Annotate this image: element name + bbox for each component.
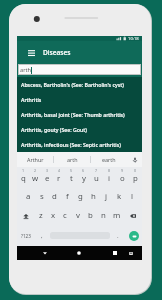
staticText: Abscess, Bartholin's (See: Bartholin's c… (21, 81, 124, 88)
button[interactable]: g (74, 187, 87, 206)
staticText: 0 (134, 168, 137, 173)
staticText: k (117, 191, 122, 202)
button[interactable]: 8 (103, 167, 116, 187)
button[interactable]: , (34, 225, 50, 246)
button[interactable]: arth (54, 152, 90, 167)
staticText: 6 (82, 168, 85, 173)
button[interactable]: l (126, 187, 139, 206)
button[interactable]: a (21, 187, 35, 206)
button[interactable]: Arthritis, infectious (See: Septic arthr… (17, 137, 142, 152)
staticText: u (94, 173, 99, 184)
button[interactable]: c (59, 206, 71, 225)
button[interactable]: Arthritis, gouty (See: Gout) (17, 122, 142, 137)
staticText: d (52, 191, 57, 202)
button[interactable]: n (97, 206, 110, 225)
staticText: . (117, 232, 119, 240)
button[interactable]: b (84, 206, 97, 225)
staticText: 2 (34, 168, 37, 173)
staticText: g (78, 191, 83, 202)
staticText: , (41, 232, 43, 240)
staticText: c (63, 210, 67, 221)
button[interactable]: Recents (108, 246, 122, 260)
button[interactable]: Backspace (123, 206, 142, 225)
staticText: Arthritis, gouty (See: Gout) (21, 126, 87, 133)
button[interactable]: 7 (90, 167, 103, 187)
staticText: p (133, 173, 138, 184)
button[interactable]: s (35, 187, 48, 206)
button[interactable]: 6 (77, 167, 90, 187)
button[interactable]: arth (18, 64, 141, 75)
staticText: j (105, 191, 108, 202)
staticText: 5 (70, 168, 73, 173)
button[interactable]: Voice input (127, 152, 142, 167)
button[interactable]: Back (38, 246, 52, 260)
staticText: x (51, 210, 56, 221)
staticText: 8 (108, 168, 111, 173)
button[interactable]: 3 (41, 167, 53, 187)
staticText: ?123 (21, 233, 31, 239)
staticText: arth (67, 156, 78, 163)
staticText: Arthritis (21, 96, 42, 103)
staticText: 4 (58, 168, 61, 173)
button[interactable]: Open navigation menu (25, 46, 38, 59)
button[interactable]: f (61, 187, 74, 206)
staticText: z (39, 210, 43, 221)
staticText: o (120, 173, 125, 184)
button[interactable]: 9 (116, 167, 129, 187)
staticText: Diseases (43, 48, 71, 57)
staticText: s (40, 191, 44, 202)
staticText: 7 (95, 168, 98, 173)
button[interactable]: Hide keyboard (124, 246, 137, 260)
staticText: earth (102, 156, 116, 163)
staticText: v (76, 210, 80, 221)
staticText: y (82, 173, 86, 184)
button[interactable]: earth (91, 152, 127, 167)
staticText: arth (20, 66, 31, 74)
button[interactable]: v (71, 206, 84, 225)
staticText: i (108, 173, 111, 184)
button[interactable]: Home (72, 246, 86, 260)
staticText: 1 (22, 168, 25, 173)
button[interactable]: ?123 (17, 225, 34, 246)
staticText: t (70, 173, 73, 184)
button[interactable]: Arthritis (17, 92, 142, 107)
button[interactable]: 0 (129, 167, 142, 187)
staticText: n (101, 210, 106, 221)
staticText: r (57, 173, 61, 184)
button[interactable]: h (87, 187, 100, 206)
button[interactable]: Search (125, 225, 142, 246)
button[interactable]: Shift (17, 206, 35, 225)
staticText: Arthritis, infectious (See: Septic arthr… (21, 141, 121, 148)
button[interactable]: 5 (65, 167, 77, 187)
staticText: q (21, 173, 26, 184)
button[interactable]: Arthur (17, 152, 53, 167)
staticText: a (26, 191, 31, 202)
button[interactable]: k (113, 187, 126, 206)
staticText: 9 (121, 168, 124, 173)
button[interactable]: x (47, 206, 59, 225)
button[interactable]: j (100, 187, 113, 206)
staticText: w (32, 173, 39, 184)
button[interactable]: 2 (29, 167, 41, 187)
staticText: 10:18 (128, 36, 139, 41)
button[interactable]: d (48, 187, 61, 206)
button[interactable]: 1 (17, 167, 29, 187)
staticText: m (113, 210, 121, 221)
staticText: e (45, 173, 50, 184)
button[interactable]: m (110, 206, 123, 225)
button[interactable]: z (35, 206, 47, 225)
staticText: b (88, 210, 93, 221)
staticText: 3 (46, 168, 49, 173)
button[interactable]: Arthritis, basal joint (See: Thumb arthr… (17, 107, 142, 122)
staticText: Arthritis, basal joint (See: Thumb arthr… (21, 111, 125, 118)
staticText: Arthur (27, 156, 44, 163)
staticText: f (66, 191, 69, 202)
staticText: h (91, 191, 96, 202)
button[interactable]: Abscess, Bartholin's (See: Bartholin's c… (17, 77, 142, 92)
button[interactable]: 4 (53, 167, 65, 187)
staticText: l (131, 191, 134, 202)
